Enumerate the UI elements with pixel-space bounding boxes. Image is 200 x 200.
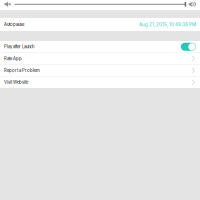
staticText: Play after Launch [4,44,34,49]
button[interactable]: Report a Problem [0,65,200,76]
staticText: Report a Problem [4,68,40,73]
button[interactable]: Rate App [0,53,200,64]
button[interactable]: Play after Launch [0,41,200,52]
staticText: Rate App [4,56,22,61]
staticText: Visit Website [4,80,28,85]
staticText: Aug 21, 2015, 10:49:38 PM [139,22,196,27]
staticText: Autopause [4,22,24,27]
button[interactable]: Visit Website [0,77,200,88]
